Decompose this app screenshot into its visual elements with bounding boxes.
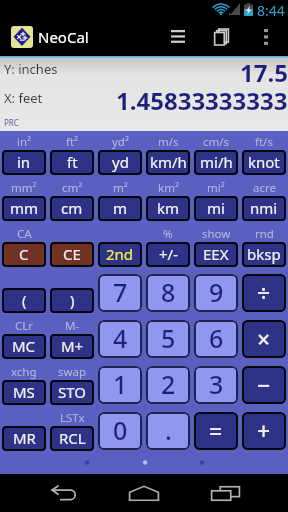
staticText: in (17, 152, 31, 172)
button[interactable]: bksp (242, 242, 286, 267)
button[interactable]: Recent apps (185, 474, 265, 512)
staticText: cm (61, 198, 83, 218)
button[interactable]: MR (2, 426, 46, 451)
button[interactable]: × (242, 320, 286, 358)
button[interactable]: mi (194, 196, 238, 221)
staticText: ÷ (257, 277, 271, 308)
staticText: 7 (113, 275, 128, 309)
button[interactable]: CE (50, 242, 94, 267)
staticText: in² (17, 134, 32, 150)
button[interactable]: 6 (194, 320, 238, 358)
staticText: MC (12, 336, 36, 356)
staticText: 1 (113, 367, 128, 401)
button[interactable]: km/h (146, 150, 190, 175)
staticText: nmi (250, 198, 278, 218)
button[interactable]: 0 (98, 412, 142, 450)
button[interactable]: MS (2, 380, 46, 405)
staticText: CA (17, 226, 32, 242)
staticText: − (257, 369, 271, 400)
button[interactable]: STO (50, 380, 94, 405)
staticText: swap (58, 364, 87, 380)
button[interactable]: MC (2, 334, 46, 359)
button[interactable]: M+ (50, 334, 94, 359)
button[interactable]: nmi (242, 196, 286, 221)
staticText: X: feet (4, 89, 43, 107)
staticText: 2nd (106, 244, 134, 264)
button[interactable]: Copy (200, 18, 244, 56)
button[interactable]: 2 (146, 366, 190, 404)
button[interactable]: Menu (156, 18, 200, 56)
staticText: CLr (15, 318, 34, 334)
button[interactable]: Home (104, 474, 184, 512)
button[interactable]: More options (244, 18, 288, 56)
staticText: ft (67, 152, 78, 172)
staticText: MS (13, 382, 35, 402)
button[interactable]: ÷ (242, 274, 286, 312)
staticText: + (257, 415, 271, 446)
button[interactable]: = (194, 412, 238, 450)
button[interactable]: m (98, 196, 142, 221)
staticText: × (257, 323, 271, 354)
staticText: 3 (209, 367, 224, 401)
button[interactable]: − (242, 366, 286, 404)
button[interactable]: knot (242, 150, 286, 175)
button[interactable]: yd (98, 150, 142, 175)
button[interactable]: 1 (98, 366, 142, 404)
staticText: km/h (150, 152, 187, 172)
button[interactable]: + (242, 412, 286, 450)
button[interactable]: +/- (146, 242, 190, 267)
staticText: 6 (209, 321, 224, 355)
staticText: m² (113, 180, 128, 196)
button[interactable]: ft (50, 150, 94, 175)
staticText: mi/h (200, 152, 233, 172)
staticText: km (157, 198, 180, 218)
staticText: 2 (161, 367, 176, 401)
button[interactable]: 5 (146, 320, 190, 358)
staticText: show (202, 226, 231, 242)
button[interactable]: RCL (50, 426, 94, 451)
staticText: knot (248, 152, 280, 172)
staticText: RCL (59, 428, 86, 448)
staticText: ( (22, 290, 27, 310)
button[interactable]: mi/h (194, 150, 238, 175)
staticText: mm (10, 198, 39, 218)
staticText: 4 (113, 321, 128, 355)
staticText: acre (253, 180, 276, 196)
button[interactable]: 7 (98, 274, 142, 312)
button[interactable]: 9 (194, 274, 238, 312)
button[interactable]: cm (50, 196, 94, 221)
button[interactable]: . (146, 412, 190, 450)
staticText: 0 (113, 413, 128, 447)
staticText: 8:44 (257, 1, 285, 19)
staticText: 1.45833333333 (116, 84, 288, 117)
staticText: CE (63, 244, 81, 264)
staticText: = (209, 415, 223, 446)
staticText: LSTx (60, 410, 85, 426)
button[interactable]: Back (24, 474, 104, 512)
staticText: ft² (66, 134, 79, 150)
staticText: km² (158, 180, 179, 196)
staticText: m/s (158, 134, 179, 150)
button[interactable]: ) (50, 288, 94, 313)
button[interactable]: km (146, 196, 190, 221)
staticText: EEX (203, 244, 229, 264)
button[interactable]: ( (2, 288, 46, 313)
staticText: NeoCal (38, 27, 89, 47)
staticText: bksp (247, 244, 281, 264)
staticText: mi (207, 198, 225, 218)
button[interactable]: 2nd (98, 242, 142, 267)
button[interactable]: 3 (194, 366, 238, 404)
staticText: 9 (209, 275, 224, 309)
button[interactable]: EEX (194, 242, 238, 267)
staticText: M- (65, 318, 80, 334)
button[interactable]: 4 (98, 320, 142, 358)
staticText: MR (13, 428, 36, 448)
button[interactable]: mm (2, 196, 46, 221)
button[interactable]: 8 (146, 274, 190, 312)
button[interactable]: C (2, 242, 46, 267)
staticText: cm/s (203, 134, 230, 150)
staticText: PRC (4, 117, 19, 128)
button[interactable]: in (2, 150, 46, 175)
staticText: C (19, 244, 29, 264)
staticText: % (163, 226, 173, 242)
